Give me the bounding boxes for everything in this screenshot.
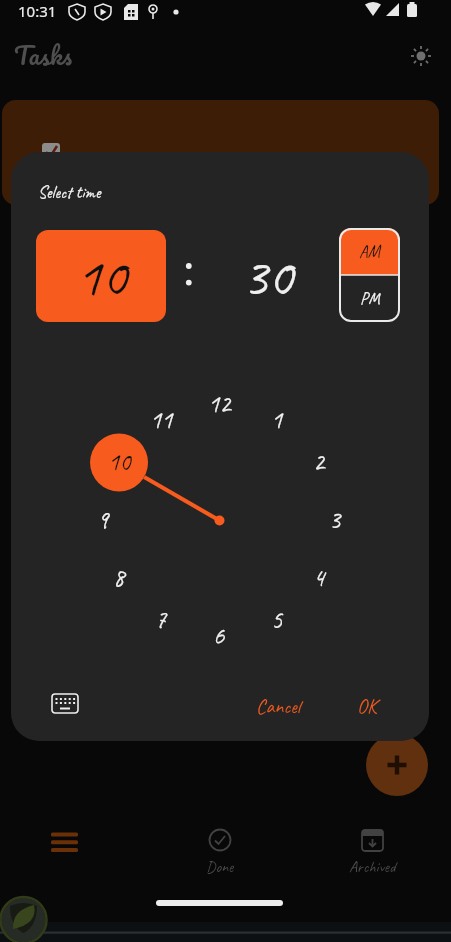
button[interactable]	[44, 825, 88, 859]
staticText: 7	[155, 604, 167, 636]
staticText: Done	[206, 857, 234, 877]
staticText: Archived	[349, 857, 396, 877]
staticText: 10	[108, 446, 131, 478]
staticText: 30	[242, 241, 293, 312]
button[interactable]	[342, 820, 402, 880]
staticText: 6	[213, 620, 225, 652]
staticText: 10	[76, 241, 127, 312]
staticText: 12	[208, 388, 231, 420]
staticText: OK	[357, 694, 377, 719]
staticText: Tasks	[14, 34, 73, 74]
button[interactable]	[190, 820, 250, 880]
staticText: 11	[150, 404, 173, 436]
button[interactable]	[48, 689, 84, 719]
staticText: Cancel	[256, 694, 301, 719]
button[interactable]: 10	[36, 230, 166, 322]
staticText: 3	[329, 504, 341, 536]
staticText: 5	[271, 604, 283, 636]
button[interactable]	[366, 734, 428, 796]
staticText: PM	[360, 288, 380, 309]
button[interactable]: Tasks	[14, 34, 94, 74]
staticText: 10:31	[18, 1, 57, 21]
button[interactable]	[408, 43, 434, 69]
staticText: 8	[113, 562, 125, 594]
staticText: 9	[97, 504, 109, 536]
staticText: Select time	[38, 182, 101, 203]
button[interactable]: AM	[339, 228, 400, 275]
button[interactable]: OK	[342, 692, 392, 720]
staticText: 1	[271, 404, 283, 436]
staticText: 2	[313, 446, 325, 478]
staticText: 4	[313, 562, 325, 594]
staticText: AM	[359, 241, 380, 262]
button[interactable]: Cancel	[248, 692, 308, 720]
button[interactable]: 30	[202, 230, 332, 322]
button[interactable]: PM	[339, 275, 400, 322]
